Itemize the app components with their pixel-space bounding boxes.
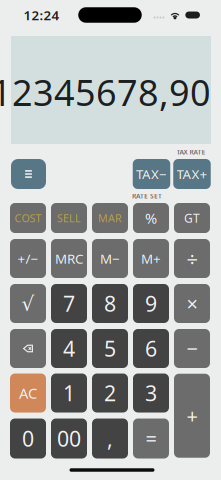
button[interactable]: 5 xyxy=(92,329,128,368)
button[interactable]: Delete xyxy=(10,329,46,368)
staticText: M− xyxy=(100,250,120,267)
button[interactable]: AC xyxy=(10,373,46,412)
staticText: % xyxy=(145,208,157,228)
staticText: 4 xyxy=(63,334,75,363)
button[interactable]: 00 xyxy=(51,418,87,458)
button[interactable]: 1 xyxy=(51,373,87,412)
button[interactable]: × xyxy=(174,284,210,323)
staticText: SELL xyxy=(57,211,81,225)
button[interactable]: + xyxy=(174,374,210,458)
button[interactable]: TAX− xyxy=(133,159,170,189)
staticText: √ xyxy=(21,292,34,315)
button[interactable]: 2 xyxy=(92,373,128,412)
button[interactable]: √ xyxy=(10,284,46,323)
staticText: TAX− xyxy=(136,165,167,183)
button[interactable]: 9 xyxy=(133,284,169,323)
staticText: 0 xyxy=(22,424,34,453)
button[interactable]: SELL xyxy=(51,203,87,233)
button[interactable]: 3 xyxy=(133,373,169,412)
button[interactable]: 4 xyxy=(51,329,87,368)
staticText: , xyxy=(107,424,113,453)
staticText: 9 xyxy=(145,289,157,318)
button[interactable]: , xyxy=(92,418,128,458)
button[interactable]: MAR xyxy=(92,203,128,233)
button[interactable]: M− xyxy=(92,239,128,278)
staticText: 7 xyxy=(63,289,75,318)
button[interactable]: COST xyxy=(10,203,46,233)
staticText: 12:24 xyxy=(23,6,59,24)
staticText: 00 xyxy=(57,424,81,453)
button[interactable]: 8 xyxy=(92,284,128,323)
staticText: GT xyxy=(184,210,200,226)
staticText: 1 xyxy=(63,379,75,407)
button[interactable]: MRC xyxy=(51,239,87,278)
staticText: ÷ xyxy=(186,245,197,272)
staticText: MRC xyxy=(55,250,83,267)
staticText: MAR xyxy=(98,211,122,225)
button[interactable]: +/− xyxy=(10,239,46,278)
staticText: 12345678,90 xyxy=(0,68,211,116)
staticText: = xyxy=(145,425,156,452)
staticText: TAX RATE xyxy=(176,148,205,156)
staticText: AC xyxy=(19,383,37,403)
button[interactable]: 0 xyxy=(10,418,46,458)
button[interactable]: = xyxy=(133,418,169,458)
staticText: + xyxy=(186,402,197,429)
staticText: × xyxy=(186,290,197,317)
button[interactable]: % xyxy=(133,203,169,233)
staticText: TAX+ xyxy=(176,165,207,183)
staticText: RATE SET xyxy=(132,192,162,200)
button[interactable]: GT xyxy=(174,203,210,233)
staticText: − xyxy=(186,335,197,362)
staticText: COST xyxy=(14,211,41,225)
button[interactable]: ÷ xyxy=(174,239,210,278)
staticText: 8 xyxy=(104,289,116,318)
button[interactable]: − xyxy=(174,329,210,368)
staticText: 6 xyxy=(145,334,157,363)
staticText: +/− xyxy=(17,250,38,267)
staticText: 2 xyxy=(104,379,116,407)
staticText: 5 xyxy=(104,334,116,363)
button[interactable]: M+ xyxy=(133,239,169,278)
button[interactable]: 7 xyxy=(51,284,87,323)
staticText: 3 xyxy=(145,379,157,407)
button[interactable]: 6 xyxy=(133,329,169,368)
button[interactable]: Menu xyxy=(11,159,46,189)
staticText: M+ xyxy=(141,250,161,267)
button[interactable]: TAX+ xyxy=(173,159,211,189)
